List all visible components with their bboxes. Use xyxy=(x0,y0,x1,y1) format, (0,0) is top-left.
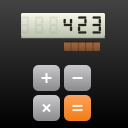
button[interactable]: Subtract xyxy=(64,65,91,91)
button[interactable]: Equals xyxy=(64,95,91,121)
button[interactable]: Multiply xyxy=(33,95,60,121)
button[interactable]: Add xyxy=(33,65,60,91)
